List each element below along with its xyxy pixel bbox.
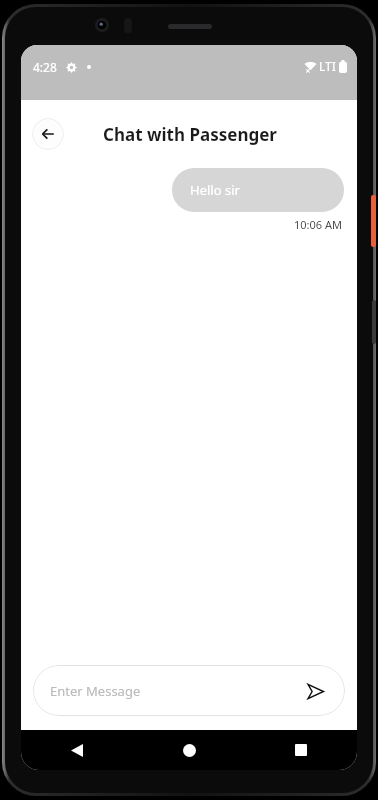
button[interactable]: Home	[133, 730, 245, 770]
button[interactable]: Back	[32, 118, 64, 150]
button[interactable]: Enter Message	[33, 665, 345, 716]
staticText: LTI	[319, 58, 336, 74]
staticText: Chat with Passenger	[103, 123, 277, 146]
staticText: Enter Message	[50, 682, 302, 700]
staticText: 10:06 AM	[294, 217, 342, 232]
staticText: Hello sir	[190, 181, 240, 199]
button[interactable]: Recent apps	[245, 730, 357, 770]
button[interactable]: Back	[21, 730, 133, 770]
button[interactable]: Hello sir	[172, 168, 344, 212]
staticText: 4:28	[33, 59, 57, 75]
button[interactable]: Send	[302, 678, 328, 704]
